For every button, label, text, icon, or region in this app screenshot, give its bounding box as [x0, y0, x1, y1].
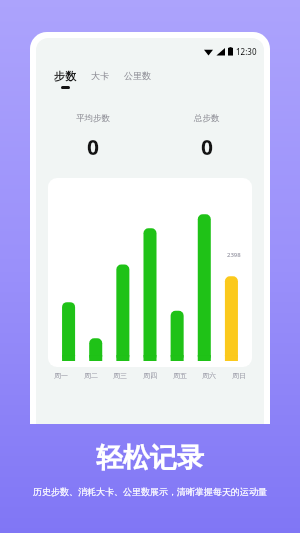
staticText: 周六	[202, 371, 216, 380]
staticText: 步数	[54, 69, 76, 83]
staticText: 总步数	[194, 113, 220, 124]
staticText: 大卡	[91, 70, 109, 81]
staticText: 平均步数	[76, 113, 110, 124]
staticText: 0	[87, 133, 100, 162]
staticText: 2398	[227, 251, 241, 259]
staticText: 周日	[232, 371, 246, 380]
staticText: 周二	[84, 371, 98, 380]
staticText: 周四	[143, 371, 157, 380]
staticText: 周三	[113, 371, 127, 380]
button[interactable]: 公里数	[122, 68, 153, 83]
staticText: 轻松记录	[96, 441, 204, 475]
staticText: 周五	[173, 371, 187, 380]
button[interactable]: 步数	[52, 67, 78, 91]
staticText: 周一	[54, 371, 68, 380]
staticText: 历史步数、消耗大卡、公里数展示，清晰掌握每天的运动量	[33, 486, 267, 497]
staticText: 0	[201, 133, 214, 162]
button[interactable]: 大卡	[89, 68, 111, 83]
staticText: 12:30	[236, 46, 257, 57]
staticText: 公里数	[124, 70, 151, 81]
